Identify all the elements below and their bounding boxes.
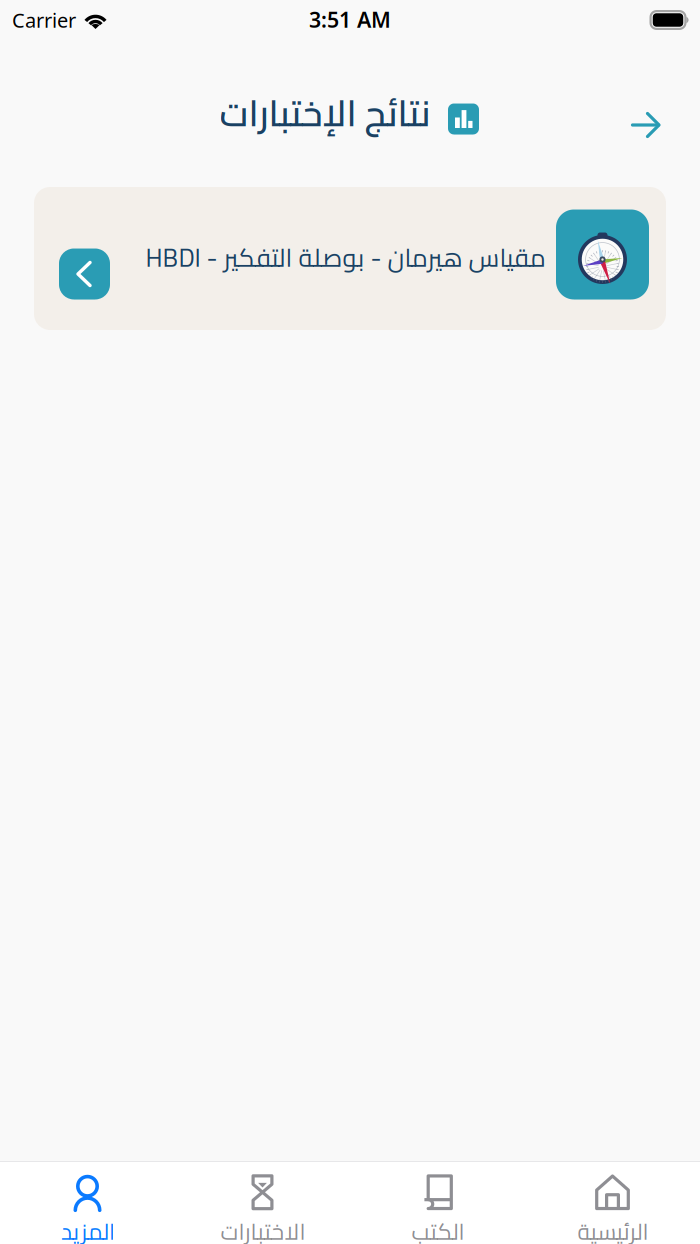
staticText: 3:51 AM	[309, 5, 391, 34]
button[interactable]: المزيد	[0, 1161, 175, 1244]
staticText: الكتب	[411, 1210, 464, 1244]
staticText: الرئيسية	[577, 1210, 648, 1244]
button[interactable]: رجوع	[618, 97, 674, 153]
button[interactable]: مقياس هيرمان - بوصلة التفكير - HBDI	[34, 187, 666, 330]
button[interactable]: عرض النتيجة	[59, 248, 110, 299]
staticText: نتائج الإختبارات	[219, 79, 430, 147]
button[interactable]: الكتب	[350, 1161, 525, 1244]
staticText: الاختبارات	[220, 1210, 305, 1244]
staticText: المزيد	[60, 1210, 114, 1244]
button[interactable]: الرئيسية	[525, 1161, 700, 1244]
button[interactable]: الاختبارات	[175, 1161, 350, 1244]
staticText: Carrier	[12, 7, 76, 33]
staticText: مقياس هيرمان - بوصلة التفكير - HBDI	[145, 234, 545, 281]
